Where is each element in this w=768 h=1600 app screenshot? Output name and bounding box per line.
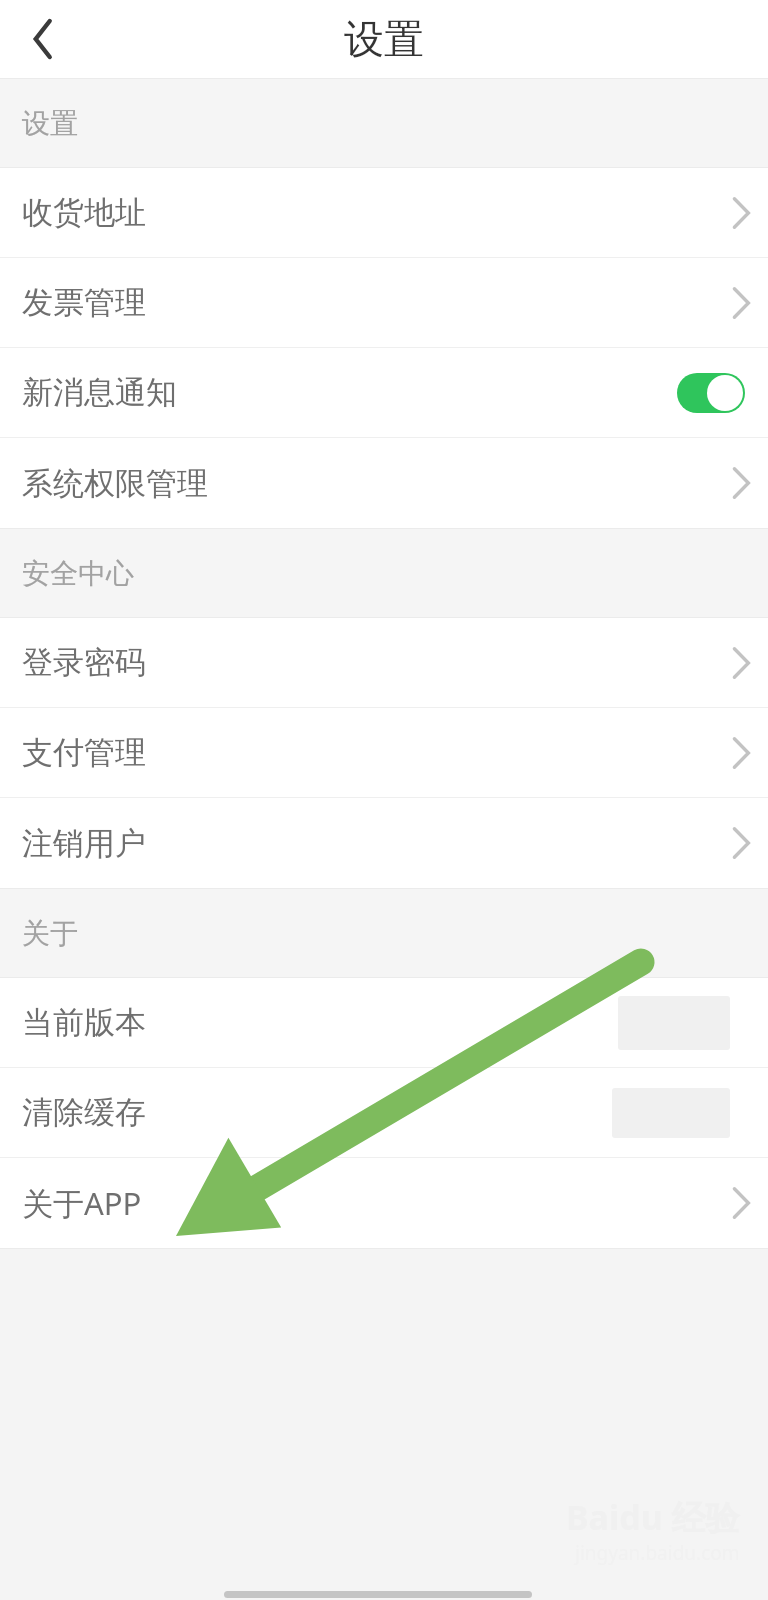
- button[interactable]: 登录密码: [0, 618, 768, 707]
- staticText: 新消息通知: [22, 373, 177, 412]
- staticText: 支付管理: [22, 733, 146, 772]
- staticText: 登录密码: [22, 643, 146, 682]
- staticText: 发票管理: [22, 283, 146, 322]
- staticText: 注销用户: [22, 824, 146, 863]
- button[interactable]: 发票管理: [0, 258, 768, 347]
- button[interactable]: 清除缓存: [0, 1068, 768, 1157]
- staticText: 关于APP: [22, 1182, 142, 1224]
- button[interactable]: 系统权限管理: [0, 438, 768, 528]
- button[interactable]: 返回: [12, 8, 74, 70]
- staticText: 系统权限管理: [22, 464, 208, 503]
- staticText: 安全中心: [22, 556, 134, 591]
- button[interactable]: 新消息通知: [0, 348, 768, 437]
- button[interactable]: 注销用户: [0, 798, 768, 888]
- staticText: 设置: [344, 14, 424, 64]
- button[interactable]: 关于APP: [0, 1158, 768, 1248]
- staticText: 关于: [22, 916, 78, 951]
- button[interactable]: 收货地址: [0, 168, 768, 257]
- staticText: 收货地址: [22, 193, 146, 232]
- button[interactable]: 当前版本: [0, 978, 768, 1067]
- button[interactable]: 新消息通知开关: [677, 373, 745, 413]
- staticText: 设置: [22, 106, 78, 141]
- button[interactable]: 支付管理: [0, 708, 768, 797]
- staticText: 当前版本: [22, 1003, 146, 1042]
- staticText: 清除缓存: [22, 1093, 146, 1132]
